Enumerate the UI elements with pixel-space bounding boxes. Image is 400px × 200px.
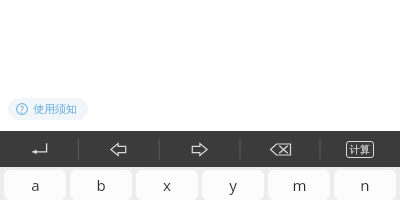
staticText: y — [229, 175, 237, 195]
staticText: b — [96, 175, 106, 195]
button[interactable]: ? — [8, 98, 88, 120]
staticText: x — [163, 175, 171, 195]
button[interactable]: Move right — [159, 131, 240, 167]
staticText: m — [292, 175, 307, 195]
button[interactable]: m — [268, 170, 330, 200]
staticText: a — [31, 175, 40, 195]
button[interactable]: y — [202, 170, 264, 200]
button[interactable]: n — [334, 170, 396, 200]
button[interactable]: Enter — [0, 131, 78, 167]
staticText: ? — [20, 104, 24, 115]
button[interactable]: Backspace — [240, 131, 320, 167]
button[interactable]: x — [136, 170, 198, 200]
staticText: 计算 — [350, 143, 370, 156]
button[interactable]: 计算 — [320, 131, 400, 167]
button[interactable]: b — [70, 170, 132, 200]
button[interactable]: a — [4, 170, 66, 200]
button[interactable]: Move left — [78, 131, 159, 167]
staticText: n — [360, 175, 370, 195]
staticText: 使用须知 — [33, 102, 77, 116]
